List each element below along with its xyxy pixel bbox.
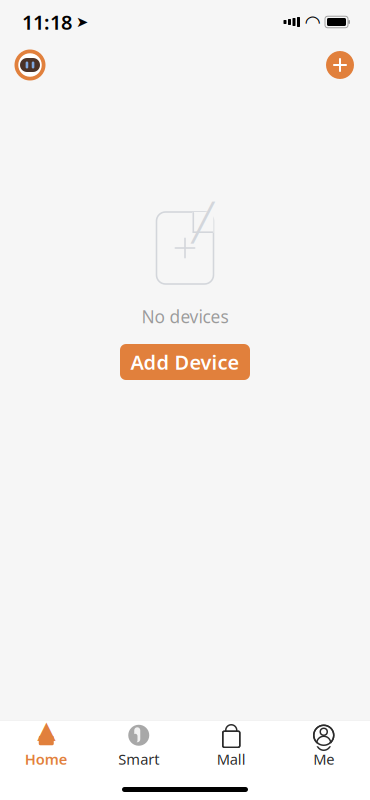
staticText: Me [313,749,334,769]
staticText: ➤ [76,14,88,30]
staticText: Home [25,749,68,769]
staticText: ◠ [305,11,319,33]
button[interactable]: Add Device [120,344,250,380]
button[interactable]: Me [277,722,370,770]
staticText: ╱ [192,202,214,243]
staticText: Add Device [130,349,239,375]
button[interactable]: Add [320,45,360,85]
staticText: ▲ [37,716,55,743]
button[interactable]: Smart [92,722,185,770]
staticText: 11:18 [22,9,72,35]
staticText: Smart [118,749,159,769]
button[interactable]: Mall [185,722,277,770]
button[interactable]: Home assistant [10,45,50,85]
staticText: Mall [217,749,246,769]
button[interactable]: ▲ [0,722,92,770]
staticText: No devices [141,305,228,328]
